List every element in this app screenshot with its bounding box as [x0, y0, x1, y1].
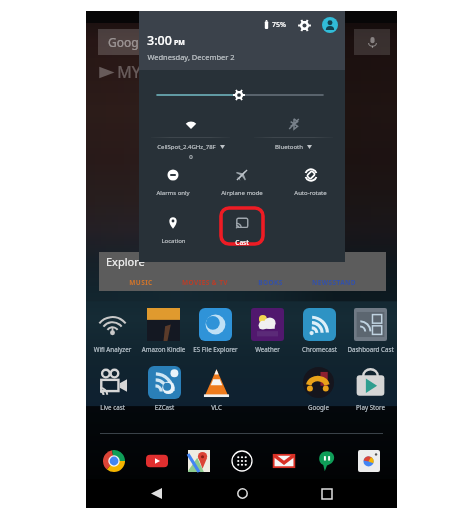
button[interactable]: Airplane mode	[207, 168, 276, 204]
button[interactable]: ES File Explorer	[190, 308, 241, 353]
staticText: ES File Explorer	[190, 345, 241, 353]
button[interactable]: Alarms only	[139, 168, 207, 204]
staticText: 75%	[272, 20, 286, 30]
button[interactable]: Chrome	[100, 447, 128, 475]
button[interactable]: EZCast	[139, 366, 190, 411]
button[interactable]: Hangouts	[313, 447, 341, 475]
staticText: Cast	[235, 238, 249, 247]
staticText: Alarms only	[156, 189, 190, 197]
staticText: Wifi Analyzer	[87, 345, 138, 353]
button[interactable]: NEWSSTAND	[312, 278, 356, 287]
button[interactable]: Gmail	[270, 447, 298, 475]
staticText: EZCast	[139, 403, 190, 411]
staticText: Weather	[242, 345, 293, 353]
button[interactable]: Play Store	[345, 366, 396, 411]
staticText: Live cast	[87, 403, 138, 411]
staticText: 3:00	[147, 32, 172, 49]
button[interactable]: Recent apps	[312, 479, 342, 508]
button[interactable]: Wifi Analyzer	[87, 308, 138, 353]
staticText: Play Store	[345, 403, 396, 411]
staticText: Chromecast	[294, 345, 345, 353]
button[interactable]: Dashboard Cast	[345, 308, 396, 353]
button[interactable]: Amazon Kindle	[138, 308, 189, 353]
staticText: VLC	[191, 403, 242, 411]
staticText: PM	[174, 38, 185, 48]
button[interactable]: VLC	[191, 366, 242, 411]
button[interactable]: Home	[227, 479, 257, 508]
button[interactable]: Switch user	[321, 16, 338, 33]
button[interactable]: Location	[139, 216, 207, 252]
button[interactable]: Chromecast	[294, 308, 345, 353]
button[interactable]: Explore	[99, 252, 386, 291]
staticText: Dashboard Cast	[345, 345, 396, 353]
button[interactable]: Cast	[207, 216, 276, 252]
button[interactable]: Google	[98, 29, 258, 55]
button[interactable]: Google	[293, 366, 344, 411]
button[interactable]: Auto-rotate	[276, 168, 345, 204]
staticText: Airplane mode	[221, 189, 263, 197]
button[interactable]: Live cast	[87, 366, 138, 411]
staticText: Location	[161, 237, 186, 245]
button[interactable]: MUSIC	[129, 278, 153, 287]
staticText: CellSpot_2.4GHz_78F	[157, 143, 216, 151]
staticText: Google	[293, 403, 344, 411]
staticText: MY	[117, 61, 141, 83]
button[interactable]: YouTube	[143, 447, 171, 475]
button[interactable]: MOVIES & TV	[182, 278, 228, 287]
button[interactable]: Back	[141, 479, 171, 508]
staticText: Wednesday, December 2	[147, 52, 235, 62]
button[interactable]: CellSpot_2.4GHz_78F	[139, 113, 242, 161]
staticText: Explore	[106, 254, 145, 269]
staticText: 0	[189, 153, 193, 161]
button[interactable]: Settings	[296, 17, 312, 33]
staticText: Bluetooth	[275, 143, 303, 151]
staticText: Auto-rotate	[294, 189, 327, 197]
button[interactable]: All apps	[228, 447, 256, 475]
button[interactable]: Bluetooth	[242, 113, 345, 161]
button[interactable]: BOOKS	[258, 278, 283, 287]
button[interactable]: Maps	[185, 447, 213, 475]
staticText: Amazon Kindle	[138, 345, 189, 353]
button[interactable]: Camera	[355, 447, 383, 475]
button[interactable]: Weather	[242, 308, 293, 353]
staticText: Google	[108, 34, 149, 50]
